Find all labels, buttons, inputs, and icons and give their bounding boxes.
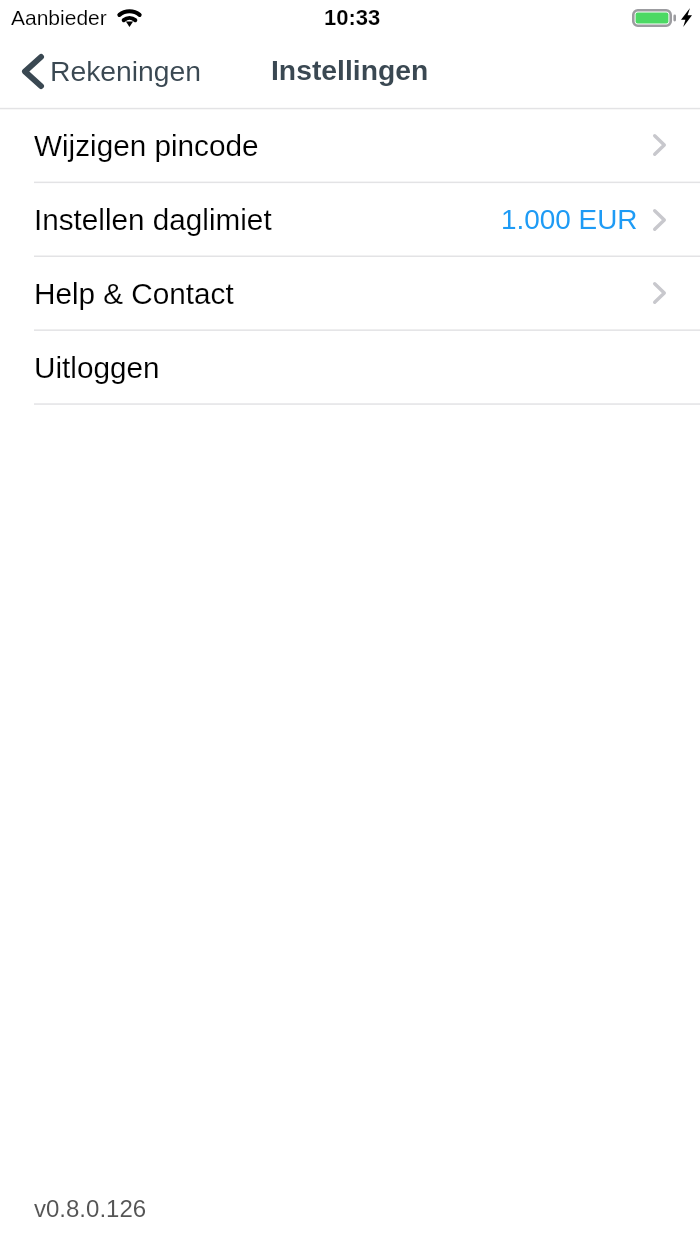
button[interactable]: Help & Contact	[0, 256, 700, 330]
staticText: 10:33	[324, 5, 381, 30]
button[interactable]: Instellen daglimiet	[0, 182, 700, 256]
other: Wi-Fi	[117, 9, 142, 27]
staticText: v0.8.0.126	[34, 1195, 147, 1222]
staticText: Aanbieder	[11, 6, 107, 29]
staticText: Instellingen	[271, 54, 429, 86]
other: Battery charging	[632, 9, 676, 27]
button[interactable]: Rekeningen	[0, 46, 216, 97]
staticText: 1.000 EUR	[501, 204, 638, 235]
button[interactable]: Wijzigen pincode	[0, 108, 700, 182]
staticText: Help & Contact	[34, 277, 234, 310]
button[interactable]: Uitloggen	[0, 330, 700, 404]
staticText: Instellen daglimiet	[34, 203, 272, 236]
staticText: Wijzigen pincode	[34, 129, 259, 162]
staticText: Rekeningen	[50, 55, 202, 87]
staticText: Uitloggen	[34, 351, 160, 384]
